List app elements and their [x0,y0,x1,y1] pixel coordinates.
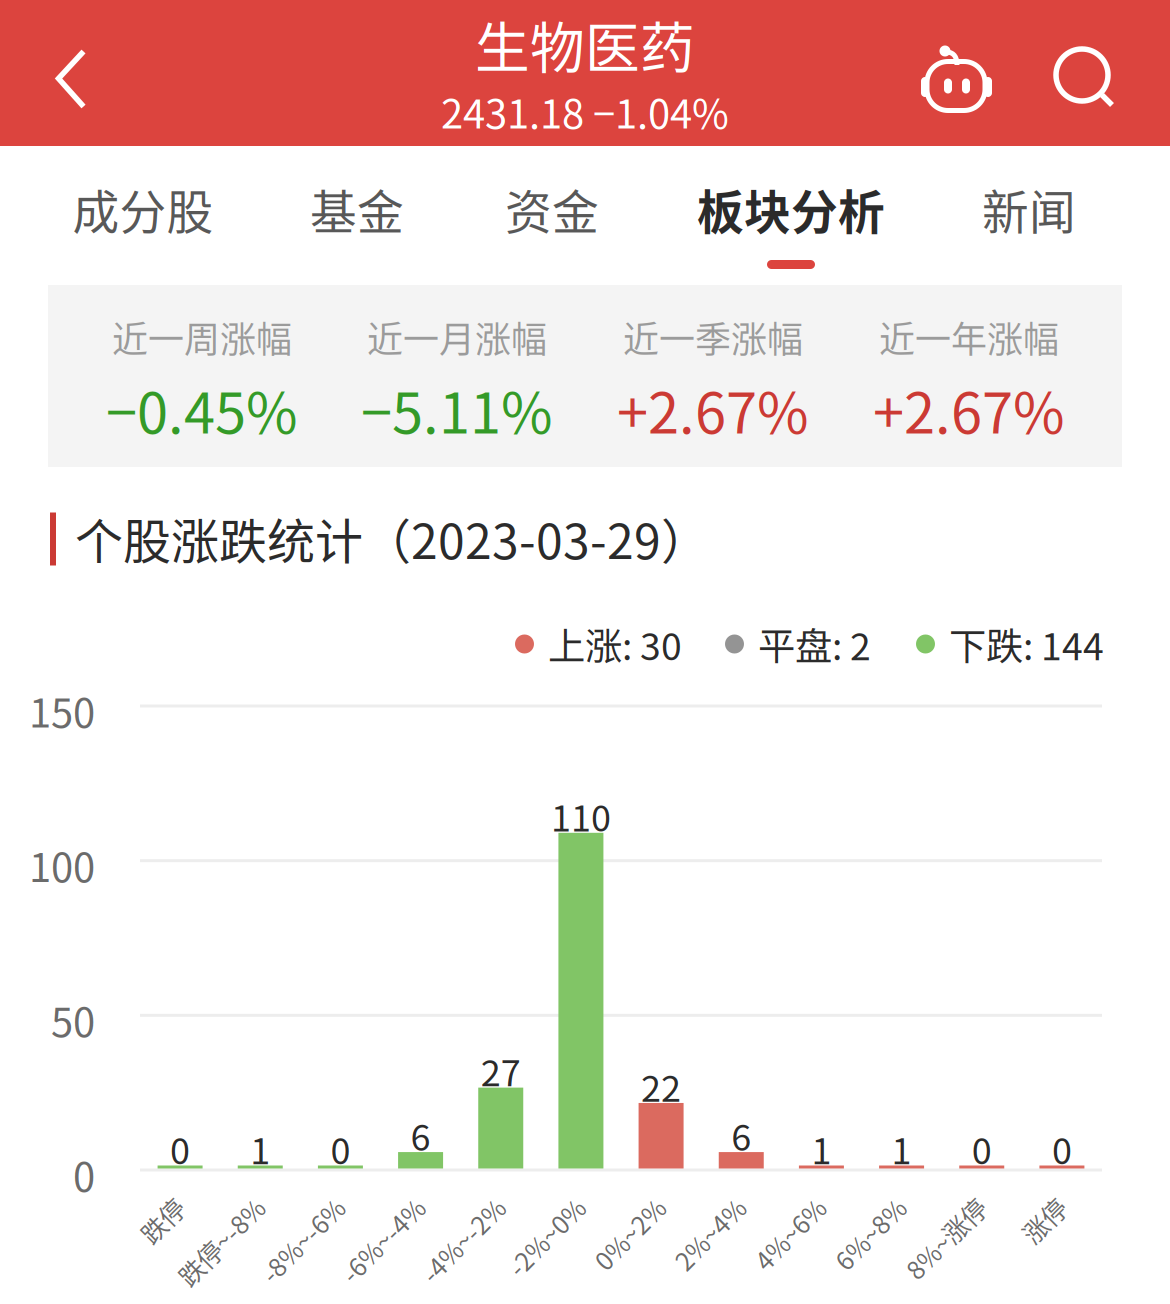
staticText: 资金 [505,175,599,243]
staticText: +2.67% [617,368,809,450]
staticText: -4%~-2% [384,1189,490,1225]
staticText: 2431.18 −1.04% [441,82,729,140]
staticText: 150 [29,681,95,739]
button[interactable]: 基金 [307,158,407,308]
staticText: 2%~4% [642,1189,730,1225]
staticText: 27 [481,1044,521,1097]
staticText: −0.45% [106,368,298,450]
staticText: 近一季涨幅 [623,311,803,363]
staticText: 上涨: 30 [548,617,682,671]
button[interactable]: 成分股 [72,158,213,308]
staticText: 近一周涨幅 [112,311,292,363]
staticText: 0%~2% [562,1189,650,1225]
button[interactable]: Back [13,6,129,152]
staticText: 近一年涨幅 [879,311,1059,363]
staticText: 4%~6% [722,1189,810,1225]
staticText: -2%~0% [473,1189,570,1225]
staticText: 成分股 [72,175,213,243]
staticText: 0 [1052,1122,1072,1174]
staticText: 1 [811,1122,831,1174]
staticText: -8%~-6% [223,1189,329,1225]
button[interactable]: Search [1032,4,1136,150]
staticText: 个股涨跌统计（2023-03-29） [75,503,709,573]
button[interactable]: 板块分析 [697,158,885,308]
staticText: 新闻 [982,175,1076,243]
staticText: 生物医药 [475,4,695,84]
staticText: 8%~涨停 [870,1189,971,1225]
staticText: +2.67% [873,368,1065,450]
staticText: 基金 [310,175,404,243]
staticText: 1 [250,1122,270,1174]
staticText: 0 [73,1145,95,1203]
staticText: 平盘: 2 [758,617,871,671]
staticText: 50 [51,990,95,1048]
button[interactable]: 新闻 [979,158,1079,308]
staticText: 0 [972,1122,992,1174]
staticText: 100 [29,836,95,894]
staticText: −5.11% [361,368,553,450]
staticText: 下跌: 144 [949,617,1104,671]
staticText: 1 [892,1122,912,1174]
staticText: 跌停 [119,1189,169,1225]
staticText: 0 [330,1122,350,1174]
staticText: 近一月涨幅 [367,311,547,363]
staticText: 6 [411,1109,431,1161]
staticText: 0 [170,1122,190,1174]
button[interactable]: 资金 [502,158,602,308]
staticText: 6%~8% [803,1189,891,1225]
staticText: 110 [551,790,611,842]
staticText: 涨停 [1001,1189,1051,1225]
staticText: 板块分析 [697,175,885,243]
button[interactable]: AI assistant [899,5,1015,151]
staticText: 6 [731,1109,751,1161]
staticText: -6%~-4% [304,1189,410,1225]
staticText: 22 [641,1060,681,1112]
staticText: 跌停~-8% [139,1189,249,1225]
